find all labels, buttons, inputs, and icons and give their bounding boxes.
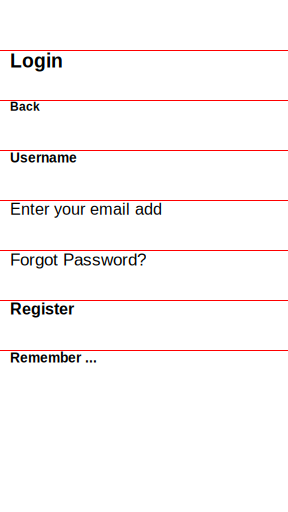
staticText: Back xyxy=(10,100,40,113)
staticText: Remember ... xyxy=(10,350,97,365)
staticText: Username xyxy=(10,150,77,165)
staticText: Login xyxy=(10,50,63,72)
staticText: Forgot Password? xyxy=(10,250,146,269)
staticText: Enter your email add xyxy=(10,200,162,218)
staticText: Register xyxy=(10,300,74,318)
